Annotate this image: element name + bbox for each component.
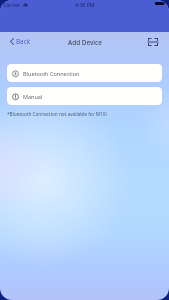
staticText: Add Device [68, 38, 102, 47]
button[interactable]: Bluetooth Connection [7, 64, 162, 82]
staticText: *Bluetooth Connection not available for … [7, 111, 107, 117]
staticText: Carrier [3, 1, 21, 8]
staticText: Back [16, 37, 31, 46]
staticText: 4:38 PM [75, 1, 95, 8]
staticText: Bluetooth Connection [23, 70, 80, 77]
button[interactable]: Manual [7, 87, 162, 105]
staticText: Manual [23, 93, 43, 100]
button[interactable]: Back [7, 34, 34, 49]
button[interactable]: Scan code [145, 35, 161, 49]
